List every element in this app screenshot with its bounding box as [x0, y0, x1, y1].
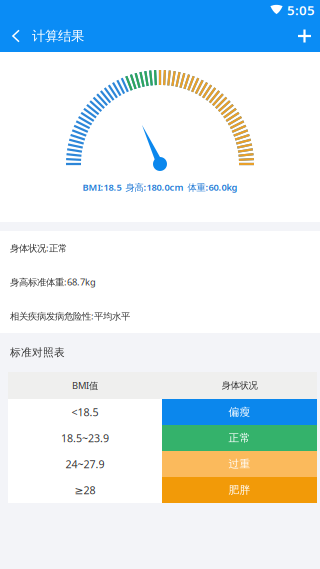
button[interactable]: Add [286, 20, 320, 52]
staticText: 肥胖 [228, 483, 250, 496]
staticText: 18.5~23.9 [61, 431, 109, 445]
staticText: 身体状况 [221, 380, 257, 391]
staticText: 身高标准体重:68.7kg [10, 276, 96, 288]
staticText: 过重 [228, 457, 250, 470]
button[interactable]: Back [0, 20, 28, 52]
staticText: BMI:18.5 身高:180.0cm 体重:60.0kg [82, 181, 237, 193]
staticText: 标准对照表 [10, 346, 65, 359]
staticText: 24~27.9 [65, 457, 104, 471]
staticText: 5:05 [287, 1, 315, 19]
staticText: 偏瘦 [228, 405, 250, 418]
staticText: BMI值 [72, 379, 98, 392]
staticText: 计算结果 [32, 28, 84, 44]
staticText: <18.5 [71, 405, 98, 419]
staticText: ≥28 [74, 483, 95, 497]
staticText: 相关疾病发病危险性:平均水平 [10, 310, 130, 322]
staticText: 正常 [228, 431, 250, 444]
staticText: 身体状况:正常 [10, 242, 67, 254]
